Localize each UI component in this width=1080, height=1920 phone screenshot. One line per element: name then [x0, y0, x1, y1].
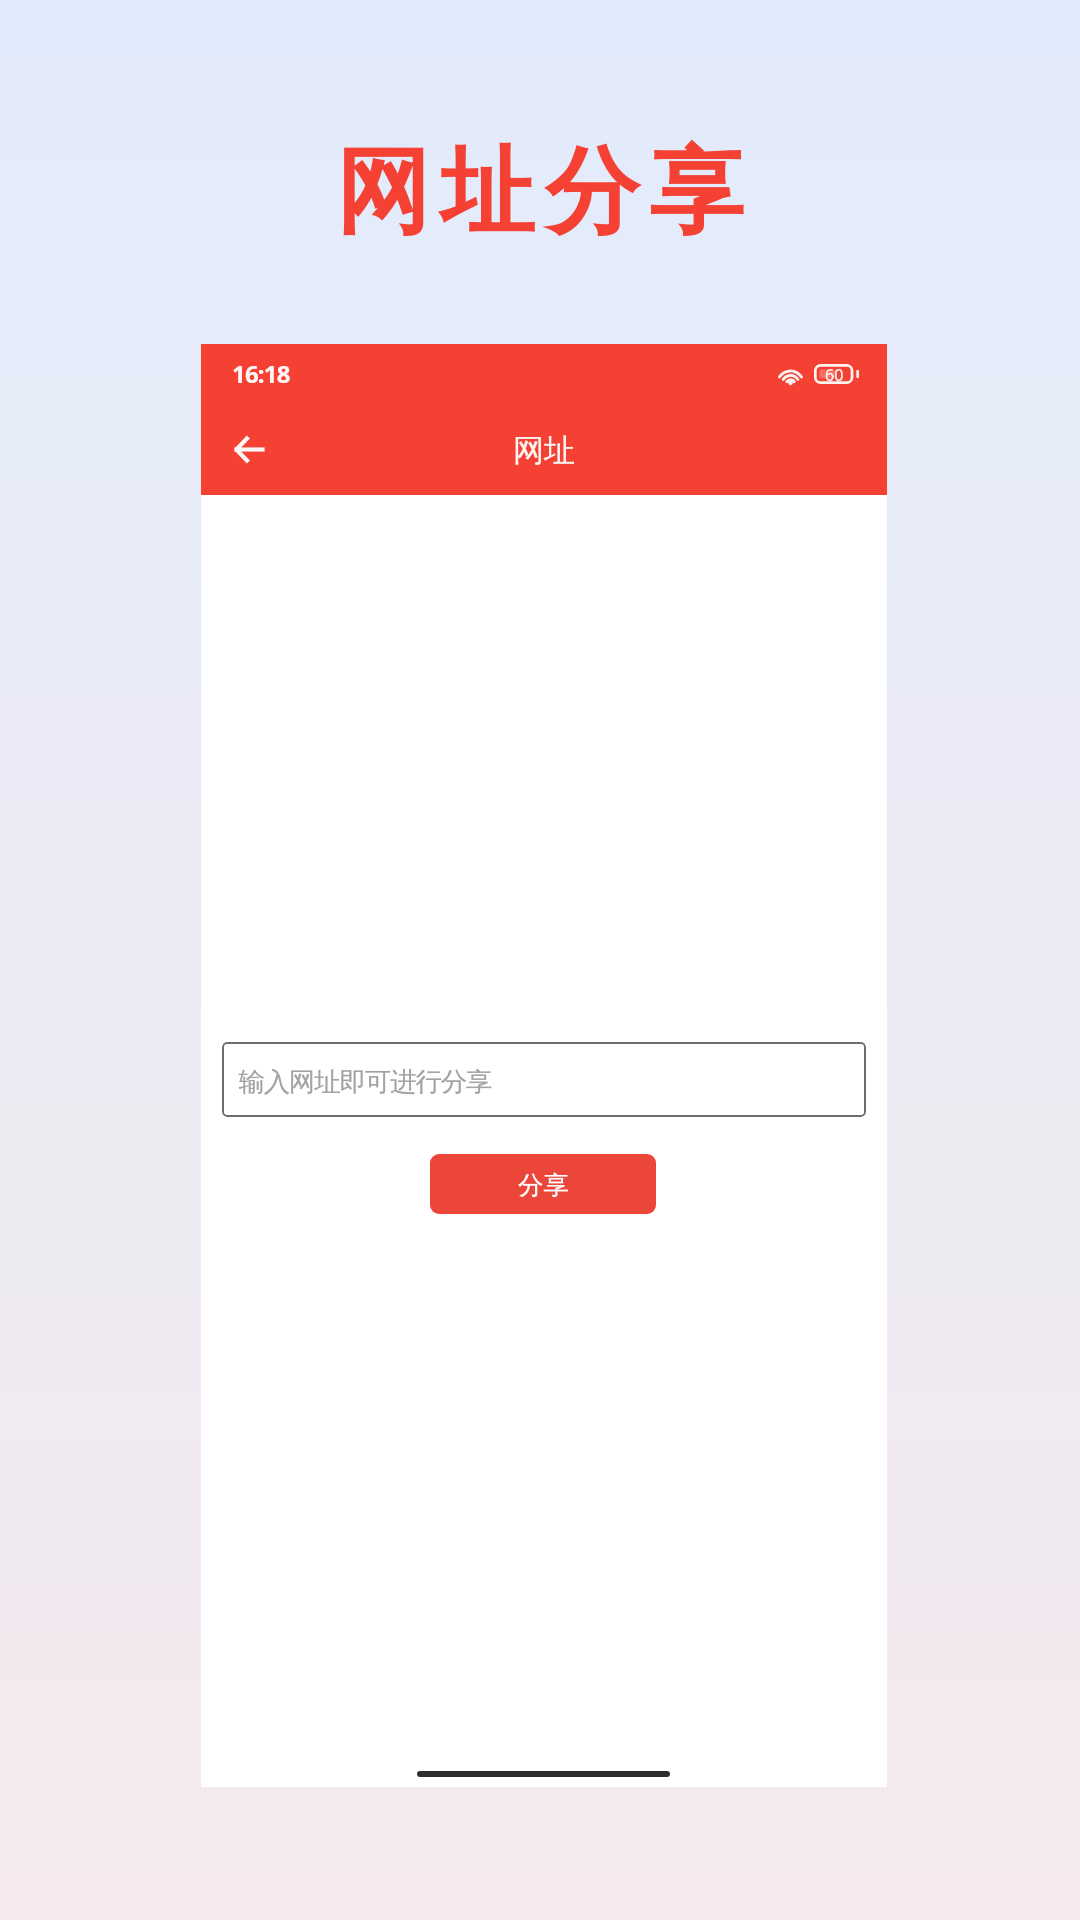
- button[interactable]: 分享: [430, 1154, 656, 1214]
- button[interactable]: 输入网址即可进行分享: [222, 1042, 866, 1117]
- staticText: 网址: [513, 431, 575, 470]
- button[interactable]: Back: [221, 421, 277, 477]
- staticText: 输入网址即可进行分享: [239, 1065, 492, 1098]
- staticText: 60: [825, 364, 844, 384]
- staticText: 16:18: [232, 357, 290, 390]
- staticText: 网址分享: [5, 133, 1080, 251]
- staticText: 分享: [518, 1169, 569, 1201]
